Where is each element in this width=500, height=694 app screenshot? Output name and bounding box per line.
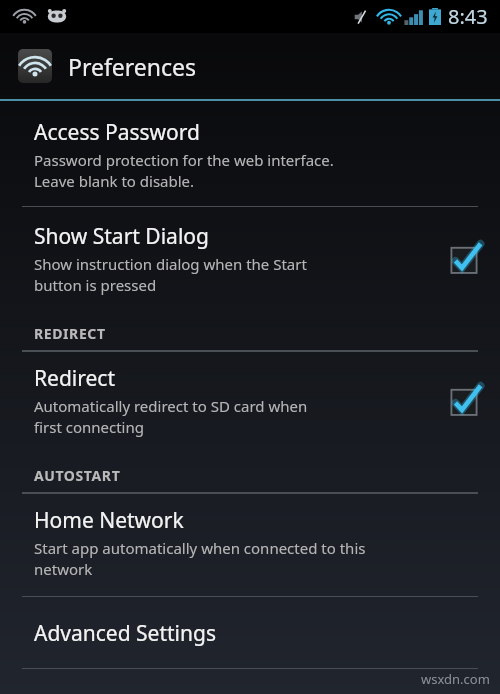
staticText: Access Password bbox=[34, 118, 200, 147]
button[interactable]: Checked bbox=[442, 379, 486, 423]
staticText: 8:43 bbox=[448, 3, 488, 30]
staticText: Password protection for the web interfac… bbox=[34, 150, 334, 192]
button[interactable]: Checked bbox=[442, 237, 486, 281]
staticText: Show Start Dialog bbox=[34, 222, 209, 251]
staticText: Advanced Settings bbox=[34, 619, 216, 648]
staticText: Start app automatically when connected t… bbox=[34, 538, 366, 580]
staticText: Show instruction dialog when the Start b… bbox=[34, 254, 307, 296]
button[interactable]: Redirect bbox=[0, 352, 500, 454]
staticText: wsxdn.com bbox=[421, 670, 490, 688]
staticText: Automatically redirect to SD card when f… bbox=[34, 396, 308, 438]
staticText: AUTOSTART bbox=[34, 466, 121, 485]
button[interactable]: Advanced Settings bbox=[0, 597, 500, 668]
button[interactable]: Access Password bbox=[0, 102, 500, 206]
staticText: Redirect bbox=[34, 364, 115, 393]
staticText: Home Network bbox=[34, 506, 184, 535]
button[interactable]: Home Network bbox=[0, 494, 500, 596]
staticText: Preferences bbox=[68, 51, 197, 82]
button[interactable]: Show Start Dialog bbox=[0, 207, 500, 312]
staticText: REDIRECT bbox=[34, 324, 106, 343]
button[interactable]: Preferences bbox=[0, 33, 500, 99]
